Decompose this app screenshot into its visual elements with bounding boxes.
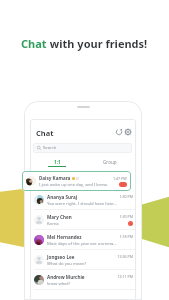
staticText: 1:47 PM <box>113 176 127 181</box>
staticText: Chat <box>36 128 54 138</box>
staticText: 12:11 PM <box>117 274 133 279</box>
staticText: Most days of the year are unremar... <box>47 241 117 247</box>
staticText: Ananya Suraj <box>47 194 78 200</box>
staticText: Korea <box>47 221 59 227</box>
staticText: I just woke up one day, and I knew. <box>39 182 108 188</box>
staticText: knew what? <box>47 281 71 287</box>
button[interactable]: Mel Hernandez <box>30 230 136 250</box>
button[interactable]: Jongseo Lee <box>30 250 136 270</box>
button[interactable]: Ananya Suraj <box>30 190 136 210</box>
button[interactable]: 1:1 <box>30 157 83 169</box>
button[interactable]: Mary Chen <box>30 210 136 230</box>
staticText: Mel Hernandez <box>47 234 82 240</box>
staticText: Search <box>43 145 57 151</box>
staticText: 1:1 <box>54 159 61 165</box>
staticText: 1:30 PM <box>119 214 133 219</box>
staticText: Andrew Murchie <box>47 274 85 280</box>
staticText: Daisy Kamara <box>39 175 71 181</box>
staticText: with your friends! <box>47 36 148 51</box>
staticText: Jongseo Lee <box>47 254 75 260</box>
button[interactable]: Group <box>83 157 136 169</box>
staticText: 1:30 PM <box>119 194 133 199</box>
staticText: Mary Chen <box>47 214 72 220</box>
staticText: 12:36 PM <box>117 254 133 259</box>
staticText: 1:18 PM <box>119 234 133 239</box>
staticText: What do you mean? <box>47 261 87 267</box>
staticText: Chat <box>21 36 47 51</box>
button[interactable]: Daisy Kamara <box>22 171 131 191</box>
staticText: You were right. I should have liste... <box>47 201 117 207</box>
button[interactable]: Andrew Murchie <box>30 270 136 290</box>
staticText: Group <box>103 159 117 165</box>
button[interactable]: Settings <box>124 128 132 136</box>
button[interactable]: Sync messages <box>115 128 123 136</box>
button[interactable]: Search <box>33 143 132 153</box>
